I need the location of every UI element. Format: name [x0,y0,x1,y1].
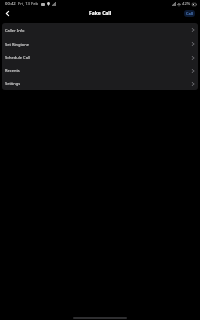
staticText: Set Ringtone [5,42,29,47]
staticText: Call [186,11,193,16]
button[interactable]: Back [1,8,14,18]
button[interactable]: Caller Info [2,23,198,37]
staticText: Recents [5,68,20,73]
staticText: Caller Info [5,28,25,33]
staticText: Fake Call [89,10,112,17]
button[interactable]: Call [184,10,195,17]
button[interactable]: Settings [2,77,198,90]
staticText: Settings [5,81,21,86]
staticText: Fri, 13 Feb [18,1,39,7]
button[interactable]: Recents [2,64,198,77]
button[interactable]: Set Ringtone [2,37,198,51]
staticText: 00:42 [5,1,16,7]
staticText: Schedule Call [5,55,30,60]
button[interactable]: Schedule Call [2,51,198,64]
staticText: 42% [182,1,191,7]
